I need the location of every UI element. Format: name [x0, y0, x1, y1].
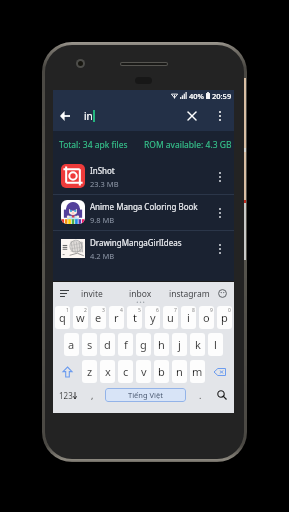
staticText: Anime Manga Coloring Book: [90, 201, 198, 212]
button[interactable]: g: [136, 333, 151, 356]
button[interactable]: z: [82, 360, 97, 383]
button[interactable]: l: [208, 333, 223, 356]
button[interactable]: d: [100, 333, 115, 356]
button[interactable]: .: [192, 388, 208, 402]
button[interactable]: 6: [145, 306, 160, 329]
staticText: 4: [120, 307, 123, 314]
button[interactable]: 3: [91, 306, 106, 329]
button[interactable]: Backspace: [208, 360, 232, 383]
staticText: inbox: [129, 288, 152, 300]
button[interactable]: Tiếng Việt: [105, 388, 186, 402]
staticText: m: [192, 364, 203, 379]
button[interactable]: m: [190, 360, 205, 383]
staticText: g: [140, 337, 147, 352]
button[interactable]: App options: [209, 159, 231, 194]
staticText: y: [150, 310, 156, 325]
button[interactable]: v: [136, 360, 151, 383]
staticText: q: [59, 310, 66, 325]
staticText: 8: [192, 307, 195, 314]
staticText: 2: [84, 307, 87, 314]
staticText: f: [124, 337, 128, 352]
staticText: t: [133, 310, 137, 325]
staticText: l: [214, 337, 217, 352]
staticText: b: [158, 364, 165, 379]
staticText: s: [87, 337, 93, 352]
staticText: 9: [210, 307, 213, 314]
button[interactable]: ,: [84, 388, 100, 402]
staticText: z: [87, 364, 93, 379]
button[interactable]: 7: [163, 306, 178, 329]
button[interactable]: 8: [181, 306, 196, 329]
staticText: k: [195, 337, 201, 352]
button[interactable]: s: [82, 333, 97, 356]
staticText: invite: [81, 288, 103, 300]
staticText: o: [203, 310, 210, 325]
button[interactable]: 5: [127, 306, 142, 329]
button[interactable]: invite: [69, 282, 115, 305]
staticText: j: [178, 337, 181, 352]
staticText: 7: [174, 307, 177, 314]
staticText: 5: [138, 307, 141, 314]
staticText: instagram: [169, 288, 210, 300]
staticText: DrawingMangaGirlIdeas: [90, 237, 182, 248]
staticText: i: [187, 310, 190, 325]
staticText: w: [76, 310, 85, 325]
staticText: 4.2 MB: [90, 251, 115, 261]
button[interactable]: Shift: [55, 360, 79, 383]
staticText: 0: [228, 307, 231, 314]
button[interactable]: App options: [209, 231, 231, 266]
button[interactable]: f: [118, 333, 133, 356]
button[interactable]: k: [190, 333, 205, 356]
button[interactable]: 0: [217, 306, 232, 329]
staticText: c: [123, 364, 129, 379]
staticText: a: [68, 337, 75, 352]
staticText: h: [158, 337, 165, 352]
button[interactable]: 2: [73, 306, 88, 329]
staticText: 20:59: [212, 91, 232, 101]
button[interactable]: 1: [55, 306, 70, 329]
button[interactable]: j: [172, 333, 187, 356]
staticText: e: [95, 310, 102, 325]
staticText: x: [105, 364, 111, 379]
staticText: ,: [91, 389, 94, 401]
staticText: n: [176, 364, 183, 379]
staticText: ROM available: 4.3 GB: [144, 139, 232, 151]
staticText: u: [167, 310, 174, 325]
staticText: 23.3 MB: [90, 179, 119, 189]
button[interactable]: Search: [211, 388, 233, 402]
button[interactable]: c: [118, 360, 133, 383]
button[interactable]: Clear search: [181, 101, 203, 131]
button[interactable]: Back: [54, 101, 76, 131]
staticText: v: [141, 364, 147, 379]
staticText: InShot: [90, 165, 115, 176]
button[interactable]: More options: [209, 101, 231, 131]
staticText: .: [199, 389, 202, 401]
button[interactable]: DrawingMangaGirlIdeas: [53, 231, 234, 266]
button[interactable]: 123: [54, 388, 82, 402]
staticText: 1: [66, 307, 69, 314]
staticText: 3: [102, 307, 105, 314]
button[interactable]: 4: [109, 306, 124, 329]
button[interactable]: n: [172, 360, 187, 383]
button[interactable]: Emoji: [214, 282, 231, 305]
staticText: Tiếng Việt: [128, 390, 163, 400]
button[interactable]: Keyboard menu: [56, 282, 72, 305]
button[interactable]: instagram: [163, 282, 215, 305]
button[interactable]: h: [154, 333, 169, 356]
button[interactable]: b: [154, 360, 169, 383]
staticText: d: [104, 337, 111, 352]
button[interactable]: InShot: [53, 159, 234, 194]
button[interactable]: App options: [209, 195, 231, 230]
staticText: 123: [59, 390, 73, 401]
button[interactable]: x: [100, 360, 115, 383]
button[interactable]: a: [64, 333, 79, 356]
staticText: 6: [156, 307, 159, 314]
button[interactable]: Anime Manga Coloring Book: [53, 195, 234, 230]
button[interactable]: 9: [199, 306, 214, 329]
staticText: 9.8 MB: [90, 215, 115, 225]
staticText: p: [221, 310, 228, 325]
staticText: 40%: [189, 91, 204, 101]
button[interactable]: inbox: [117, 282, 163, 305]
staticText: in: [84, 109, 93, 123]
staticText: r: [114, 310, 119, 325]
